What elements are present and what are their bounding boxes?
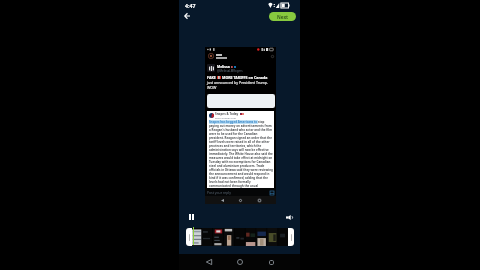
- staticText: @MelissaLMRogers: [217, 69, 243, 73]
- button[interactable]: Back: [180, 10, 193, 22]
- button[interactable]: Trim start: [186, 228, 192, 246]
- staticText: posts.snopes.com: [215, 116, 237, 119]
- button[interactable]: Volume: [282, 210, 296, 224]
- button[interactable]: Back: [204, 257, 214, 267]
- button[interactable]: Trim end: [288, 228, 294, 246]
- button[interactable]: Pause: [184, 210, 198, 224]
- staticText: Melissa: [217, 64, 230, 69]
- button[interactable]: Next: [269, 12, 296, 21]
- staticText: MORE TARIFFS on Canada: [222, 75, 268, 80]
- staticText: 4:47: [185, 2, 196, 9]
- staticText: Next: [277, 14, 289, 20]
- button[interactable]: Recents: [266, 257, 276, 267]
- button[interactable]: Home: [235, 257, 245, 267]
- staticText: Snopes has begged Americans to stop payi…: [209, 120, 273, 188]
- staticText: Snopes & Today: [215, 112, 239, 116]
- staticText: FAKE: [207, 75, 216, 80]
- staticText: just announced by President Trump.: [207, 80, 268, 85]
- staticText: WOW: [207, 85, 217, 90]
- staticText: Post your reply: [207, 190, 231, 195]
